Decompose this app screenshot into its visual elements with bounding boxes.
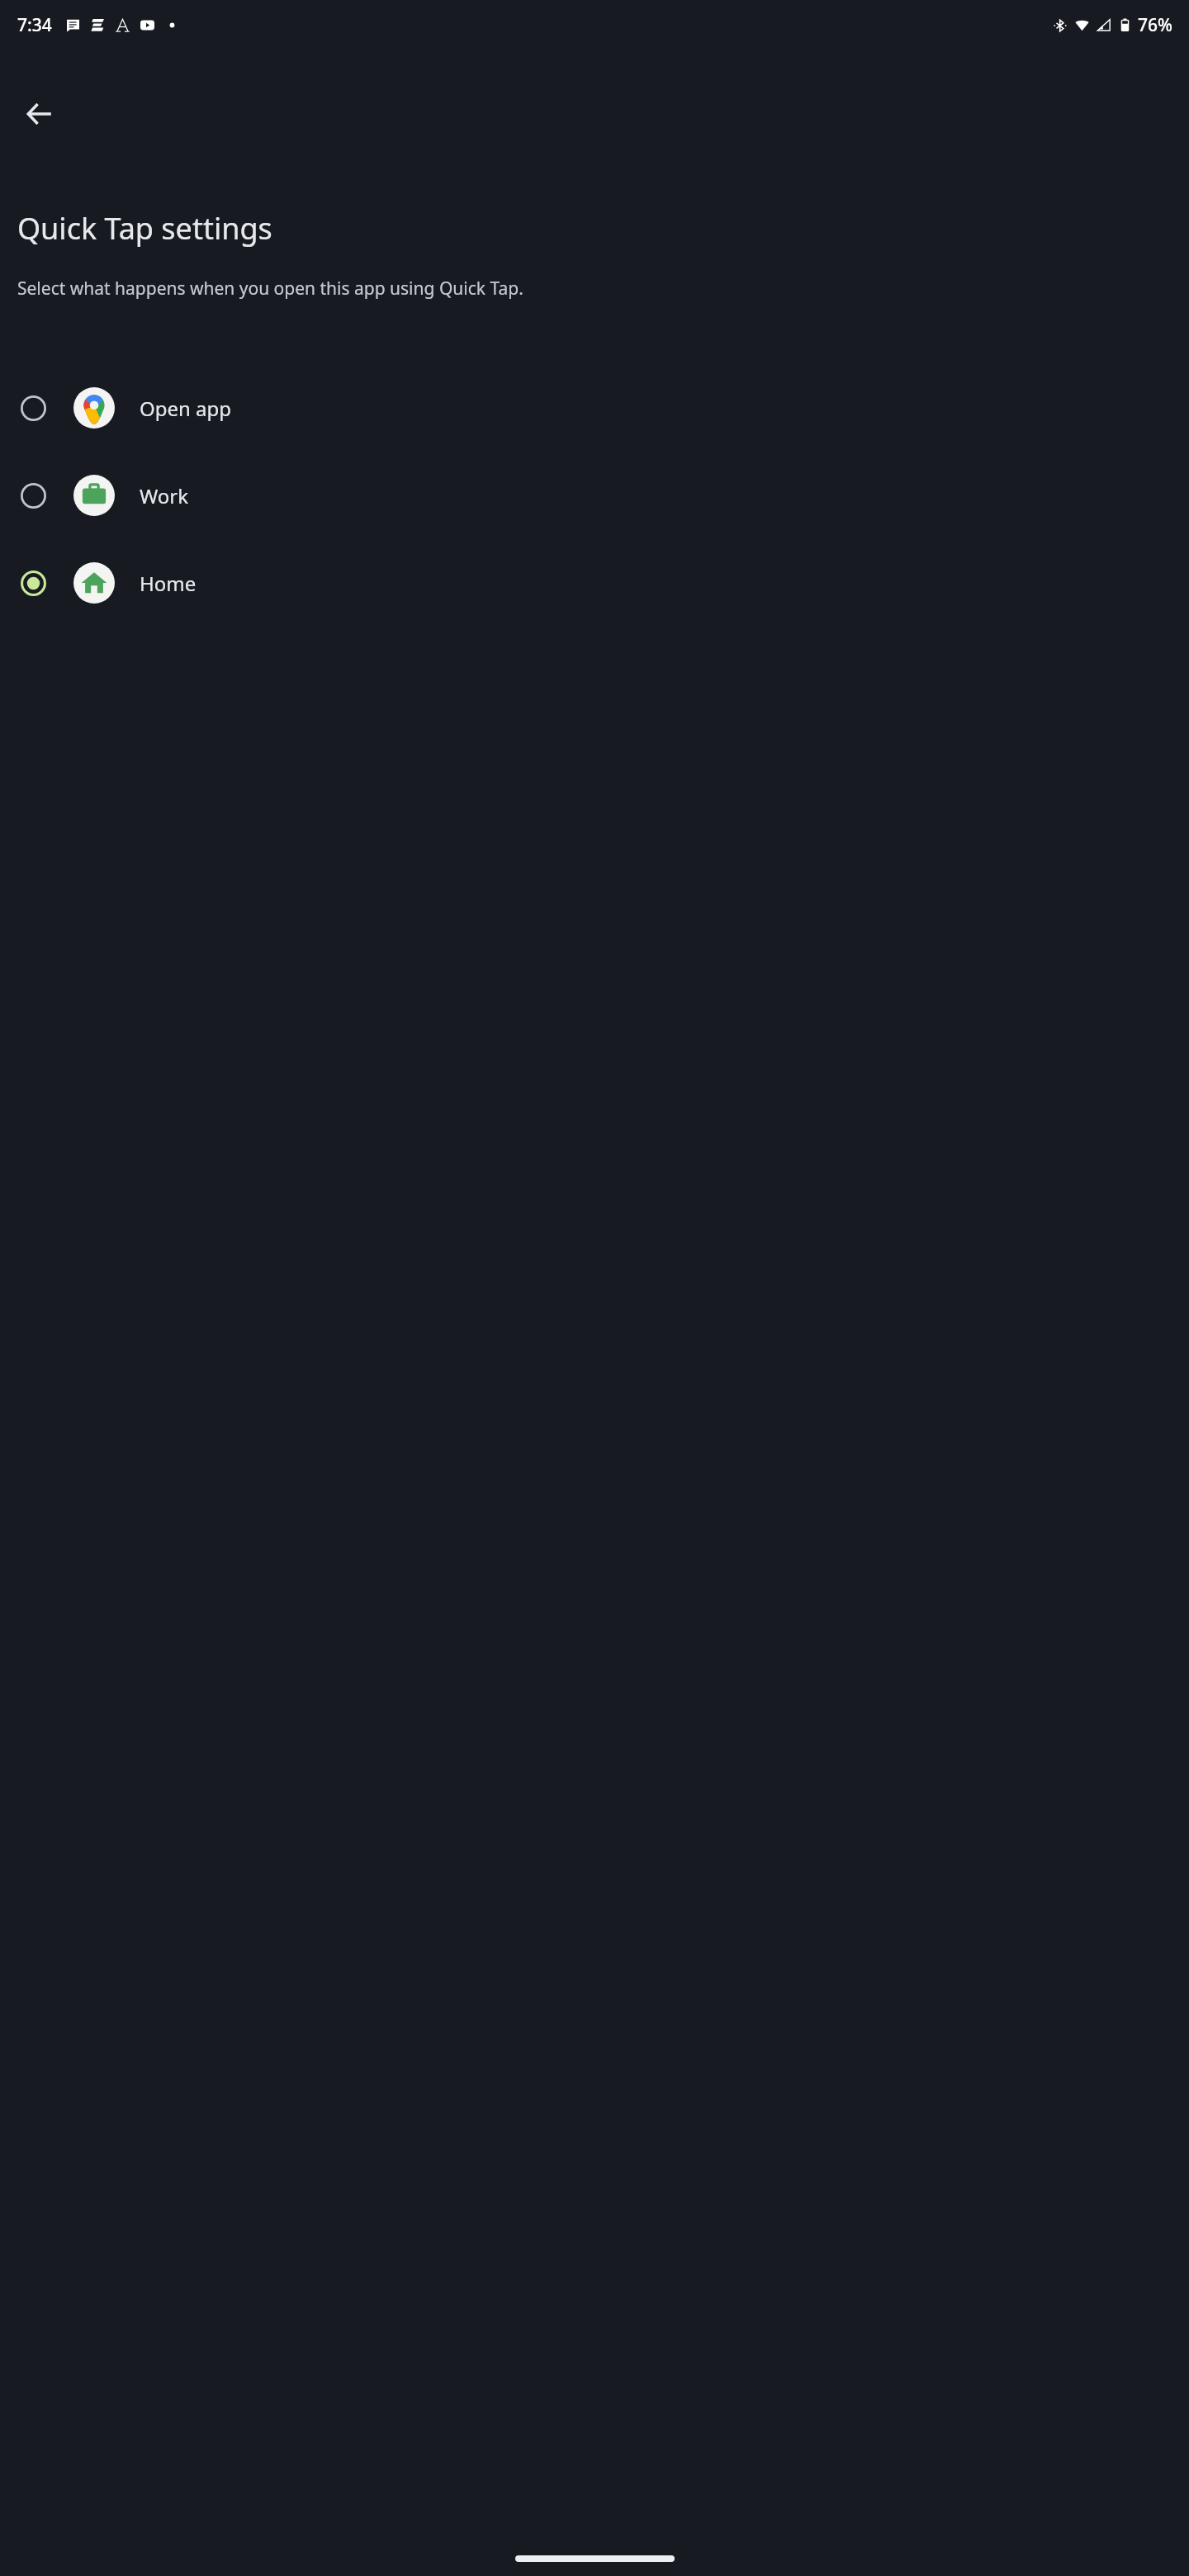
button[interactable]: Open app — [0, 364, 1189, 452]
staticText: Work — [140, 482, 189, 509]
button[interactable]: Work — [0, 452, 1189, 539]
staticText: Home — [140, 570, 197, 597]
staticText: Select what happens when you open this a… — [17, 277, 523, 301]
button[interactable]: Back — [10, 84, 69, 144]
button[interactable]: Home — [0, 539, 1189, 627]
staticText: 7:34 — [17, 13, 52, 37]
staticText: 76% — [1138, 13, 1172, 37]
staticText: Quick Tap settings — [17, 208, 272, 249]
staticText: Open app — [140, 395, 232, 422]
